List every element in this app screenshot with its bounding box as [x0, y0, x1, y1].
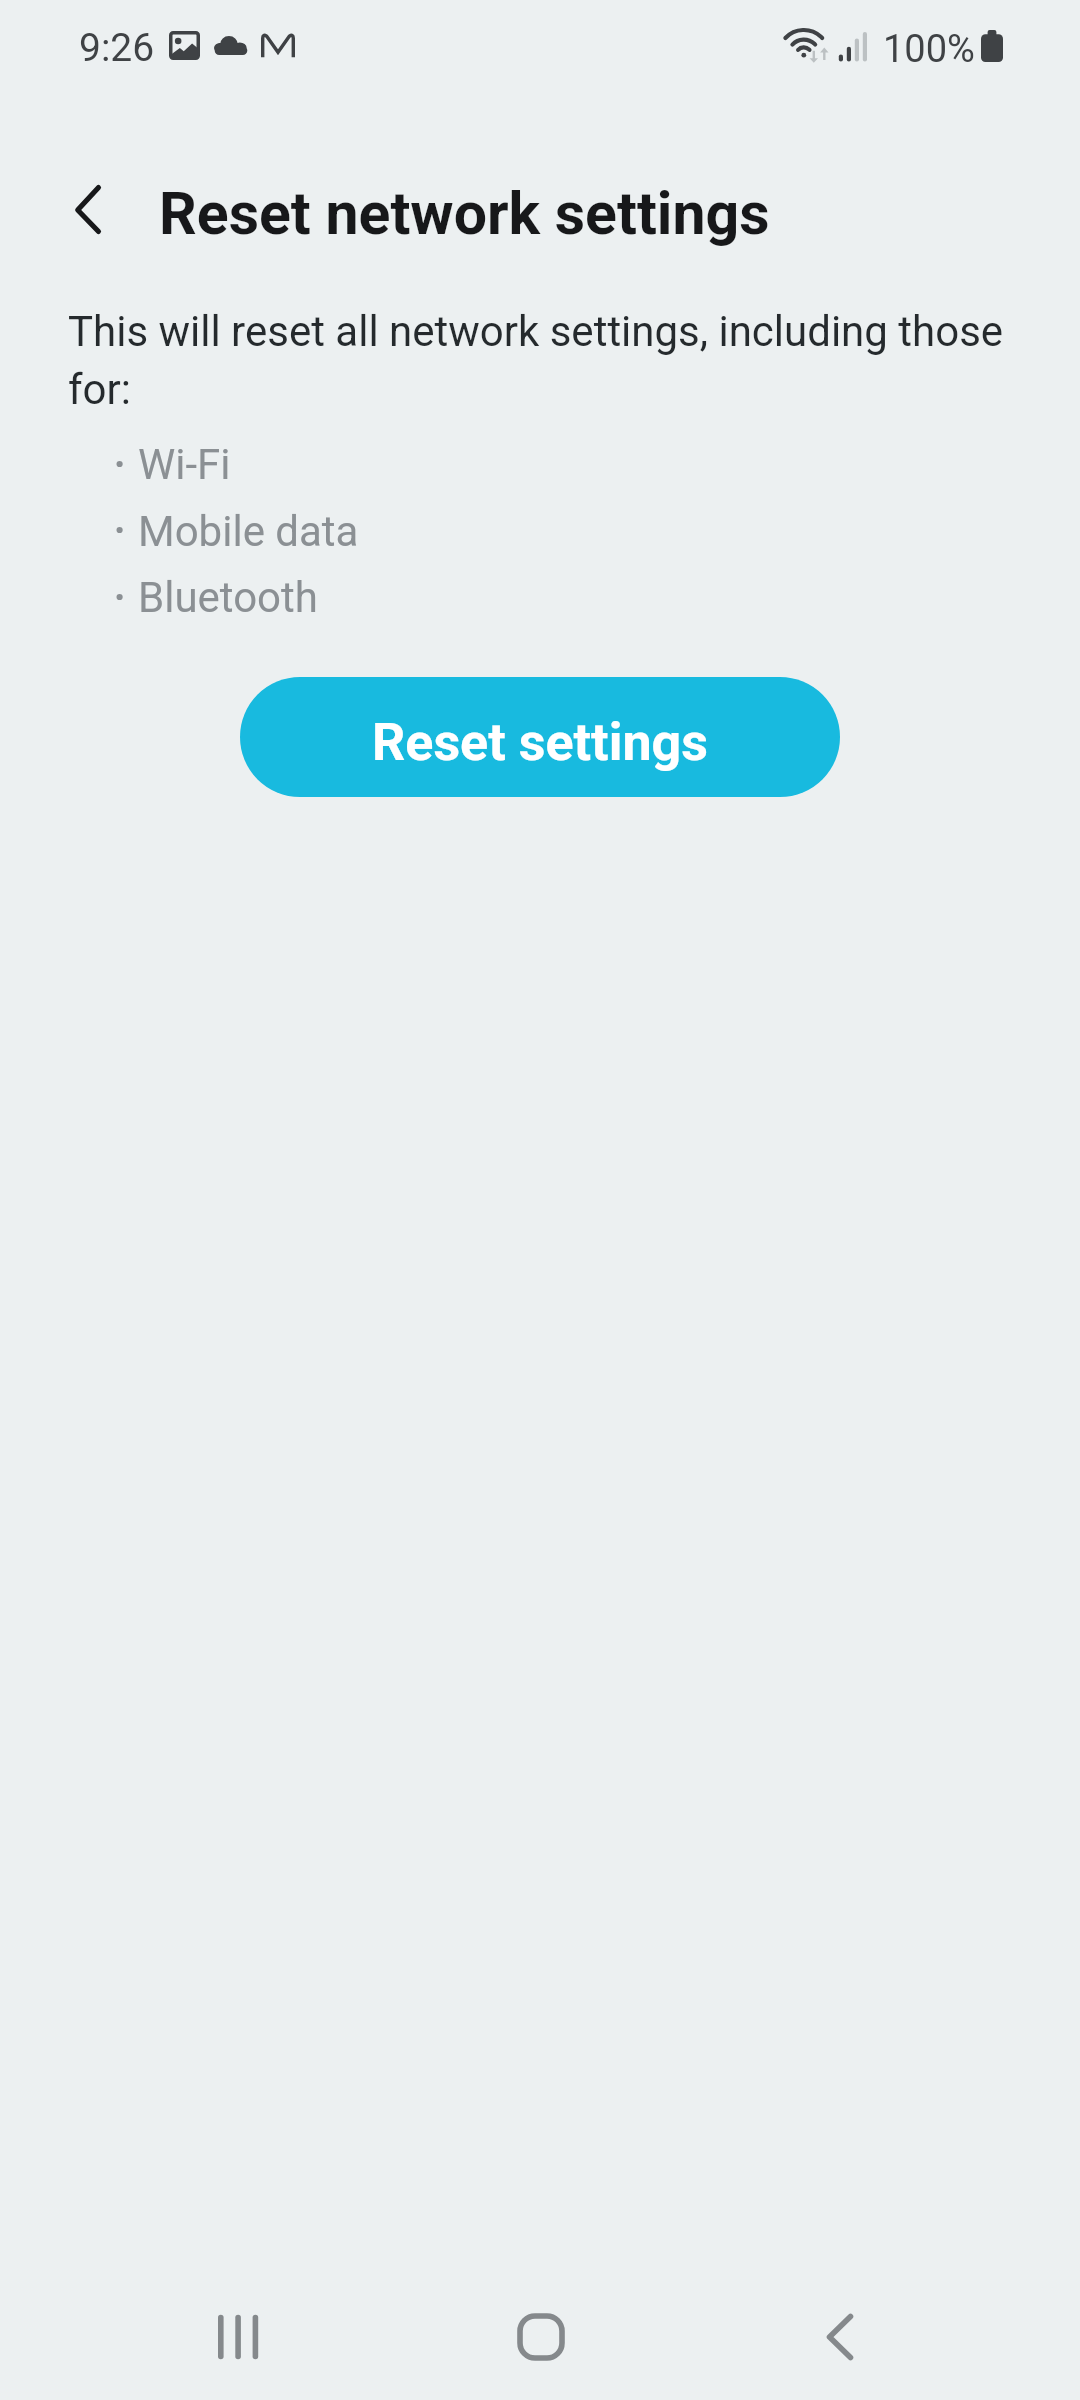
button[interactable]: Navigate up — [40, 175, 136, 245]
staticText: Mobile data — [138, 507, 359, 556]
button[interactable]: Reset settings — [240, 677, 840, 797]
staticText: Reset settings — [372, 712, 709, 773]
staticText: Bluetooth — [138, 573, 318, 622]
staticText: Reset network settings — [159, 179, 770, 248]
staticText: 9:26 — [79, 25, 155, 71]
button[interactable]: Home — [451, 2274, 631, 2400]
staticText: Wi-Fi — [138, 440, 231, 489]
button[interactable]: Recent apps — [149, 2274, 329, 2400]
staticText: This will reset all network settings, in… — [68, 307, 1016, 414]
button[interactable]: Back — [752, 2274, 932, 2400]
staticText: 100% — [883, 27, 975, 72]
